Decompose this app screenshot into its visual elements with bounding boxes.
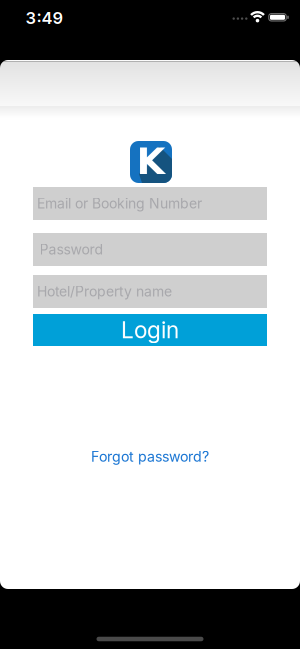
staticText: 3:49 [25,8,63,28]
staticText: K [136,140,165,183]
staticText: Login [121,316,179,344]
button[interactable]: Password [33,233,267,266]
staticText: Forgot password? [91,448,209,465]
button[interactable]: Hotel/Property name [33,275,267,308]
button[interactable]: Forgot password? [91,448,209,465]
staticText: Hotel/Property name [37,283,172,300]
staticText: Email or Booking Number [37,195,202,212]
button[interactable]: Email or Booking Number [33,187,267,220]
staticText: Password [39,241,103,258]
button[interactable]: Login [33,314,267,346]
